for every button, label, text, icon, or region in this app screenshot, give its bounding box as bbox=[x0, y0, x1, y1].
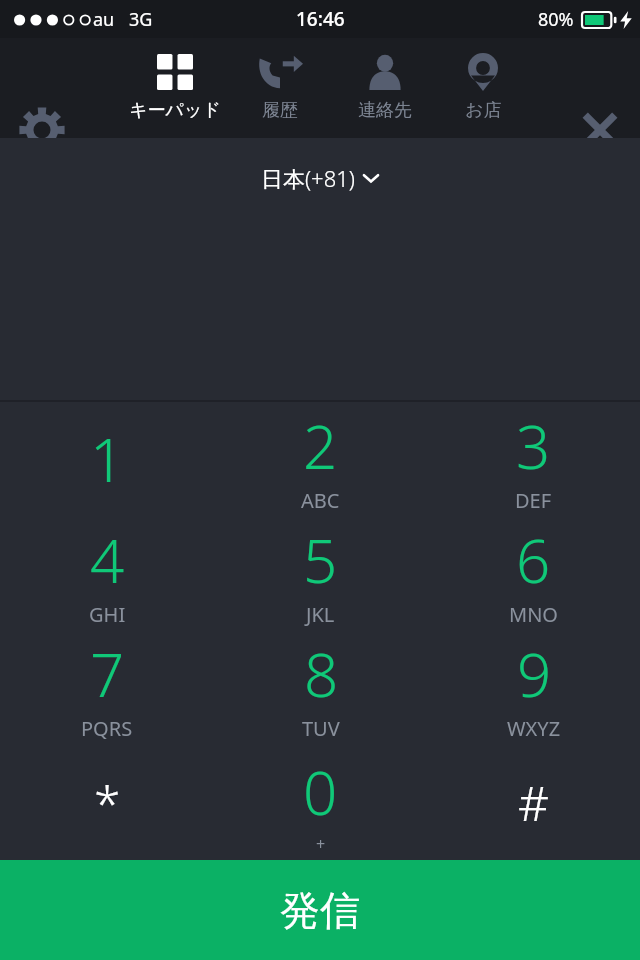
button[interactable]: お店 bbox=[432, 38, 534, 138]
staticText: JKL bbox=[306, 601, 335, 628]
staticText: WXYZ bbox=[507, 715, 561, 742]
staticText: 3 bbox=[516, 405, 551, 487]
button[interactable]: * bbox=[0, 745, 214, 860]
staticText: 3G bbox=[129, 7, 153, 32]
button[interactable]: 7 bbox=[0, 630, 214, 745]
button[interactable]: 0 bbox=[214, 745, 427, 860]
staticText: ABC bbox=[301, 487, 340, 514]
button[interactable]: 5 bbox=[214, 516, 427, 630]
button[interactable]: キーパッド bbox=[124, 38, 226, 138]
button[interactable]: # bbox=[427, 745, 640, 860]
button[interactable]: 1 bbox=[0, 402, 214, 516]
staticText: 2 bbox=[303, 405, 338, 487]
button[interactable]: 3 bbox=[427, 402, 640, 516]
staticText: キーパッド bbox=[129, 99, 221, 122]
staticText: 発信 bbox=[280, 885, 360, 935]
staticText: 16:46 bbox=[296, 6, 345, 32]
staticText: au bbox=[93, 7, 115, 32]
staticText: GHI bbox=[89, 601, 126, 628]
button[interactable]: 発信 bbox=[0, 860, 640, 960]
button[interactable]: Settings bbox=[7, 95, 77, 165]
button[interactable]: 4 bbox=[0, 516, 214, 630]
staticText: お店 bbox=[465, 99, 502, 122]
staticText: 連絡先 bbox=[358, 99, 412, 122]
staticText: 9 bbox=[517, 633, 552, 715]
staticText: 5 bbox=[303, 519, 338, 601]
staticText: 4 bbox=[90, 519, 125, 601]
staticText: 8 bbox=[304, 633, 339, 715]
button[interactable]: 9 bbox=[427, 630, 640, 745]
button[interactable]: Close bbox=[565, 95, 635, 165]
staticText: + bbox=[316, 833, 326, 855]
button[interactable]: 6 bbox=[427, 516, 640, 630]
staticText: * bbox=[94, 770, 121, 835]
staticText: 80% bbox=[538, 7, 574, 32]
button[interactable]: 日本(+81) bbox=[251, 158, 389, 198]
staticText: MNO bbox=[509, 601, 558, 628]
staticText: 履歴 bbox=[262, 99, 298, 122]
staticText: 0 bbox=[303, 751, 338, 833]
staticText: 7 bbox=[90, 633, 125, 715]
staticText: DEF bbox=[515, 487, 552, 514]
staticText: 6 bbox=[516, 519, 551, 601]
staticText: PQRS bbox=[81, 715, 133, 742]
button[interactable]: 2 bbox=[214, 402, 427, 516]
button[interactable]: 8 bbox=[214, 630, 427, 745]
staticText: 1 bbox=[90, 418, 125, 500]
staticText: TUV bbox=[302, 715, 340, 742]
button[interactable]: 履歴 bbox=[229, 38, 331, 138]
staticText: # bbox=[518, 770, 550, 835]
staticText: 日本(+81) bbox=[261, 163, 355, 193]
button[interactable]: 連絡先 bbox=[334, 38, 436, 138]
